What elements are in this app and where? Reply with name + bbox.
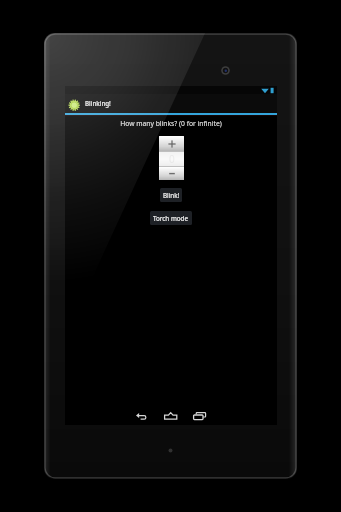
- staticText: Torch mode: [153, 214, 189, 223]
- staticText: Blinking!: [85, 99, 111, 107]
- staticText: How many blinks? (0 for infinite): [120, 119, 222, 128]
- staticText: 0: [169, 152, 175, 166]
- button[interactable]: Home: [160, 405, 180, 422]
- button[interactable]: Increase count: [159, 136, 184, 151]
- button[interactable]: Recents: [189, 405, 209, 422]
- button[interactable]: Decrease count: [159, 167, 184, 180]
- button[interactable]: Blink!: [160, 188, 182, 202]
- staticText: Blink!: [163, 191, 180, 200]
- button[interactable]: Torch mode: [150, 211, 192, 225]
- button[interactable]: Back: [132, 405, 152, 422]
